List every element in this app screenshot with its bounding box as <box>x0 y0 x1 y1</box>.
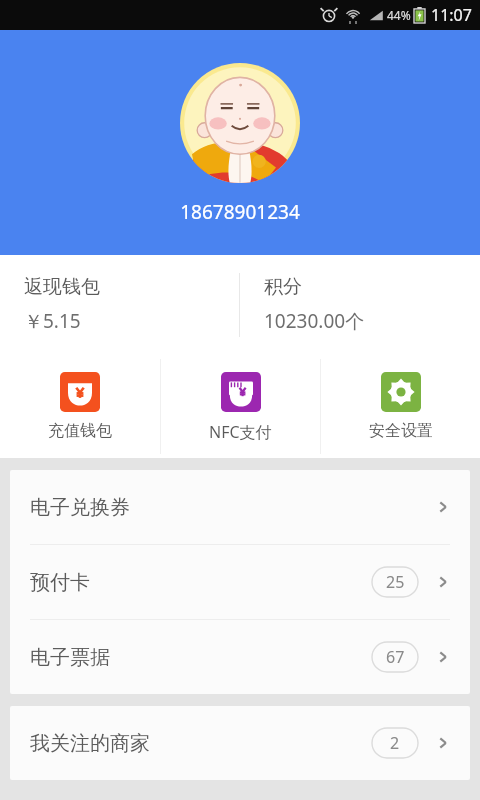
staticText: 电子兑换券 <box>30 495 130 520</box>
button[interactable]: 充值钱包 <box>0 355 160 458</box>
button[interactable]: 电子兑换券 <box>10 470 470 544</box>
button[interactable]: NFC支付 <box>161 355 320 458</box>
staticText: 67 <box>386 646 405 668</box>
other: Open 电子兑换券 <box>434 498 452 516</box>
staticText: 10230.00个 <box>264 308 365 334</box>
button[interactable]: 预付卡 <box>10 545 470 619</box>
staticText: 11:07 <box>431 4 472 26</box>
staticText: 安全设置 <box>369 421 433 441</box>
staticText: NFC支付 <box>209 421 272 443</box>
other: Open 我关注的商家 <box>434 734 452 752</box>
staticText: 2 <box>390 732 400 754</box>
button[interactable]: 安全设置 <box>321 355 480 458</box>
staticText: 我关注的商家 <box>30 731 150 756</box>
staticText: 25 <box>386 571 405 593</box>
button[interactable]: 电子票据 <box>10 620 470 694</box>
staticText: 18678901234 <box>180 199 300 225</box>
other: Open 预付卡 <box>434 573 452 591</box>
other: Open 电子票据 <box>434 648 452 666</box>
staticText: 返现钱包 <box>24 275 100 299</box>
staticText: ￥5.15 <box>24 308 81 334</box>
staticText: 44% <box>387 7 411 23</box>
staticText: 电子票据 <box>30 645 110 670</box>
button[interactable]: 我关注的商家 <box>10 706 470 780</box>
staticText: 预付卡 <box>30 570 90 595</box>
other: Avatar <box>180 63 300 183</box>
staticText: 充值钱包 <box>48 421 112 441</box>
staticText: 积分 <box>264 275 302 299</box>
